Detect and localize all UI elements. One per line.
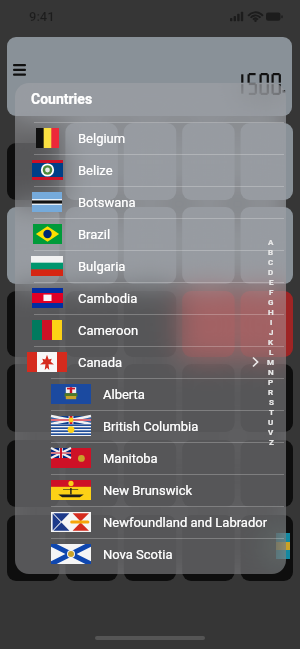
staticText: British Columbia: [103, 419, 199, 434]
button[interactable]: Belize: [15, 154, 286, 186]
button[interactable]: Cameroon: [15, 314, 286, 346]
staticText: S: [269, 398, 274, 407]
staticText: R: [268, 388, 274, 397]
button[interactable]: Newfoundland and Labrador: [15, 506, 286, 538]
staticText: E: [269, 278, 274, 287]
staticText: L: [269, 348, 274, 357]
staticText: Newfoundland and Labrador: [103, 515, 268, 530]
staticText: Belgium: [78, 131, 126, 146]
staticText: I: [270, 318, 273, 327]
staticText: U: [268, 418, 274, 427]
button[interactable]: British Columbia: [15, 410, 286, 442]
button[interactable]: Manitoba: [15, 442, 286, 474]
staticText: New Brunswick: [103, 483, 193, 498]
staticText: Belize: [78, 163, 113, 178]
staticText: H: [268, 308, 274, 317]
staticText: K: [268, 338, 274, 347]
staticText: Nova Scotia: [103, 547, 173, 562]
staticText: T: [269, 408, 274, 417]
staticText: V: [268, 428, 274, 437]
staticText: Z: [269, 438, 274, 447]
staticText: F: [269, 288, 274, 297]
staticText: Cameroon: [78, 323, 139, 338]
staticText: J: [269, 328, 274, 337]
button[interactable]: Canada: [15, 346, 286, 378]
staticText: P: [268, 378, 274, 387]
staticText: Countries: [31, 91, 93, 107]
button[interactable]: New Brunswick: [15, 474, 286, 506]
staticText: Bulgaria: [78, 259, 126, 274]
button[interactable]: Cambodia: [15, 282, 286, 314]
staticText: Brazil: [78, 227, 111, 242]
staticText: D: [268, 268, 274, 277]
button[interactable]: Nova Scotia: [15, 538, 286, 570]
staticText: Canada: [78, 355, 123, 370]
staticText: N: [268, 368, 274, 377]
staticText: Cambodia: [78, 291, 138, 306]
staticText: Alberta: [103, 387, 145, 402]
staticText: C: [268, 258, 274, 267]
button[interactable]: Belgium: [15, 122, 286, 154]
staticText: A: [268, 238, 274, 247]
staticText: B: [268, 248, 274, 257]
staticText: G: [268, 298, 274, 307]
button[interactable]: Brazil: [15, 218, 286, 250]
staticText: Manitoba: [103, 451, 158, 466]
other: Expand Canada: [251, 356, 261, 368]
button[interactable]: Bulgaria: [15, 250, 286, 282]
staticText: Botswana: [78, 195, 136, 210]
button[interactable]: Alberta: [15, 378, 286, 410]
button[interactable]: Botswana: [15, 186, 286, 218]
staticText: M: [267, 358, 275, 367]
other: Alphabet index: [267, 237, 275, 447]
staticText: 9:41: [29, 9, 55, 24]
